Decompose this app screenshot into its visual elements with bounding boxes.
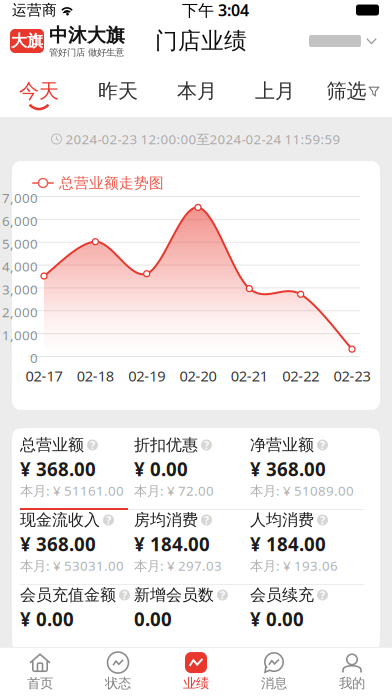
staticText: 净营业额 bbox=[250, 435, 314, 455]
button[interactable]: 筛选 bbox=[314, 62, 392, 82]
staticText: 新增会员数 bbox=[134, 585, 214, 605]
staticText: 1,000 bbox=[2, 326, 38, 344]
staticText: 总营业额走势图 bbox=[59, 174, 164, 192]
staticText: 02-20 bbox=[179, 366, 216, 385]
staticText: ¥ 368.00 bbox=[250, 457, 326, 481]
button[interactable]: 现金流收入 bbox=[20, 511, 132, 584]
staticText: 折扣优惠 bbox=[134, 435, 198, 455]
staticText: ¥ 0.00 bbox=[20, 607, 74, 631]
staticText: 状态 bbox=[105, 675, 131, 691]
staticText: 现金流收入 bbox=[20, 510, 100, 530]
staticText: ¥ 184.00 bbox=[134, 532, 210, 556]
button[interactable]: 房均消费 bbox=[134, 511, 246, 584]
staticText: 本月: ¥ 51161.00 bbox=[20, 482, 124, 499]
button[interactable]: 总营业额 bbox=[20, 436, 132, 509]
staticText: ? bbox=[90, 438, 95, 452]
staticText: 本月 bbox=[177, 79, 217, 103]
staticText: 02-17 bbox=[25, 366, 62, 385]
staticText: 中沐大旗 bbox=[49, 24, 125, 47]
staticText: 会员充值金额 bbox=[20, 585, 116, 605]
staticText: 本月: ¥ 297.03 bbox=[134, 557, 222, 574]
staticText: 5,000 bbox=[2, 235, 38, 252]
staticText: 大旗 bbox=[11, 31, 43, 51]
staticText: 今天 bbox=[19, 79, 59, 103]
staticText: 3,000 bbox=[2, 280, 38, 298]
staticText: 0.00 bbox=[134, 607, 172, 631]
staticText: 02-22 bbox=[282, 366, 319, 385]
staticText: 人均消费 bbox=[250, 510, 314, 530]
staticText: 业绩 bbox=[183, 675, 209, 691]
staticText: ¥ 368.00 bbox=[20, 457, 96, 481]
staticText: 02-21 bbox=[231, 366, 268, 385]
button[interactable]: 消息 bbox=[235, 648, 313, 696]
staticText: 筛选 bbox=[326, 79, 366, 103]
staticText: ? bbox=[320, 588, 325, 602]
staticText: ? bbox=[204, 513, 209, 527]
button[interactable]: 选择门店 bbox=[301, 24, 385, 58]
staticText: 6,000 bbox=[2, 212, 38, 230]
staticText: ¥ 0.00 bbox=[250, 607, 304, 631]
staticText: ? bbox=[122, 588, 127, 602]
staticText: 我的 bbox=[339, 675, 365, 691]
staticText: 2024-02-23 12:00:00至2024-02-24 11:59:59 bbox=[65, 130, 340, 148]
staticText: ? bbox=[320, 513, 325, 527]
button[interactable]: 人均消费 bbox=[250, 511, 362, 584]
button[interactable]: 昨天 bbox=[79, 62, 157, 117]
button[interactable]: 折扣优惠 bbox=[134, 436, 246, 509]
button[interactable]: 今天 bbox=[0, 62, 78, 117]
staticText: 本月: ¥ 51089.00 bbox=[250, 482, 354, 499]
button[interactable]: 状态 bbox=[79, 648, 157, 696]
staticText: 总营业额 bbox=[20, 435, 84, 455]
staticText: 本月: ¥ 72.00 bbox=[134, 482, 214, 499]
button[interactable]: 业绩 bbox=[157, 648, 235, 696]
staticText: 0 bbox=[30, 349, 38, 367]
staticText: ? bbox=[320, 438, 325, 452]
staticText: ¥ 368.00 bbox=[20, 532, 96, 556]
staticText: 昨天 bbox=[98, 79, 138, 103]
button[interactable]: 我的 bbox=[313, 648, 391, 696]
staticText: ? bbox=[220, 588, 225, 602]
staticText: 7,000 bbox=[2, 189, 38, 207]
button[interactable]: 净营业额 bbox=[250, 436, 362, 509]
staticText: 4,000 bbox=[2, 258, 38, 275]
staticText: ¥ 0.00 bbox=[134, 457, 188, 481]
button[interactable]: 首页 bbox=[1, 648, 79, 696]
staticText: 管好门店 做好生意 bbox=[49, 47, 124, 58]
button[interactable]: 本月 bbox=[158, 62, 236, 117]
staticText: ¥ 184.00 bbox=[250, 532, 326, 556]
staticText: 房均消费 bbox=[134, 510, 198, 530]
staticText: ? bbox=[106, 513, 111, 527]
staticText: 02-19 bbox=[128, 366, 165, 385]
button[interactable]: 会员续充 bbox=[250, 586, 362, 636]
staticText: 门店业绩 bbox=[155, 27, 247, 55]
staticText: 消息 bbox=[261, 675, 287, 691]
staticText: 会员续充 bbox=[250, 585, 314, 605]
staticText: 运营商 bbox=[12, 1, 57, 19]
staticText: 2,000 bbox=[2, 303, 38, 321]
staticText: 首页 bbox=[27, 675, 53, 691]
staticText: 下午 3:04 bbox=[182, 0, 249, 21]
staticText: 本月: ¥ 53031.00 bbox=[20, 557, 124, 574]
staticText: ? bbox=[204, 438, 209, 452]
staticText: 02-23 bbox=[333, 366, 370, 385]
staticText: 02-18 bbox=[77, 366, 114, 385]
button[interactable]: 会员充值金额 bbox=[20, 586, 132, 636]
button[interactable]: 上月 bbox=[236, 62, 314, 117]
button[interactable]: 新增会员数 bbox=[134, 586, 246, 636]
staticText: 本月: ¥ 193.06 bbox=[250, 557, 338, 574]
staticText: 上月 bbox=[255, 79, 295, 103]
